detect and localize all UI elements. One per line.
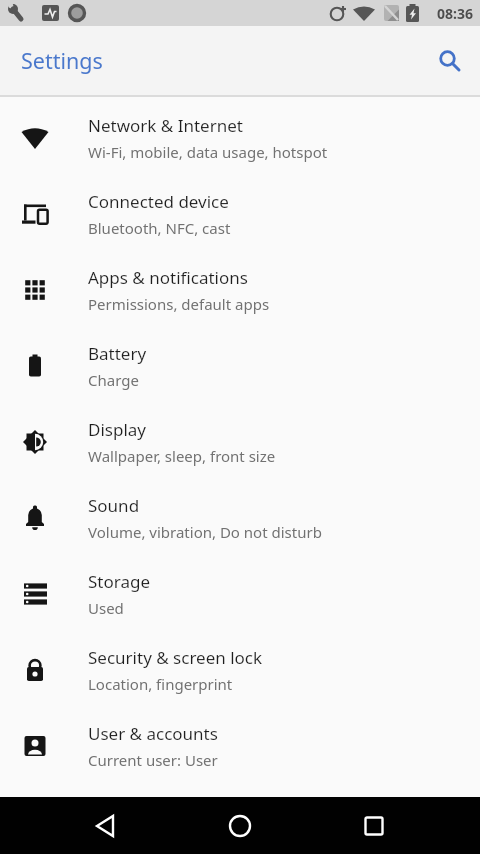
button[interactable]: Battery: [0, 325, 480, 401]
staticText: Display: [88, 418, 146, 441]
staticText: Sound: [88, 494, 140, 517]
button[interactable]: [195, 797, 285, 854]
staticText: 08:36: [437, 4, 473, 23]
staticText: Security & screen lock: [88, 646, 263, 669]
staticText: Wi-Fi, mobile, data usage, hotspot: [88, 142, 328, 162]
staticText: Connected device: [88, 190, 229, 213]
button[interactable]: [428, 39, 472, 83]
staticText: User & accounts: [88, 722, 218, 745]
staticText: Location, fingerprint: [88, 674, 233, 694]
button[interactable]: [329, 797, 419, 854]
button[interactable]: User & accounts: [0, 705, 480, 781]
button[interactable]: Apps & notifications: [0, 249, 480, 325]
staticText: Permissions, default apps: [88, 294, 270, 314]
staticText: Storage: [88, 570, 151, 593]
staticText: Settings: [21, 46, 103, 75]
staticText: Current user: User: [88, 750, 218, 770]
staticText: Charge: [88, 370, 139, 390]
button[interactable]: Display: [0, 401, 480, 477]
button[interactable]: Connected device: [0, 173, 480, 249]
staticText: Apps & notifications: [88, 266, 248, 289]
button[interactable]: Storage: [0, 553, 480, 629]
staticText: Used: [88, 598, 124, 618]
staticText: Wallpaper, sleep, front size: [88, 446, 276, 466]
staticText: Network & Internet: [88, 114, 243, 137]
button[interactable]: [61, 797, 151, 854]
staticText: Battery: [88, 342, 147, 365]
staticText: Bluetooth, NFC, cast: [88, 218, 231, 238]
button[interactable]: Sound: [0, 477, 480, 553]
button[interactable]: Security & screen lock: [0, 629, 480, 705]
staticText: Volume, vibration, Do not disturb: [88, 522, 322, 542]
button[interactable]: Network & Internet: [0, 97, 480, 173]
